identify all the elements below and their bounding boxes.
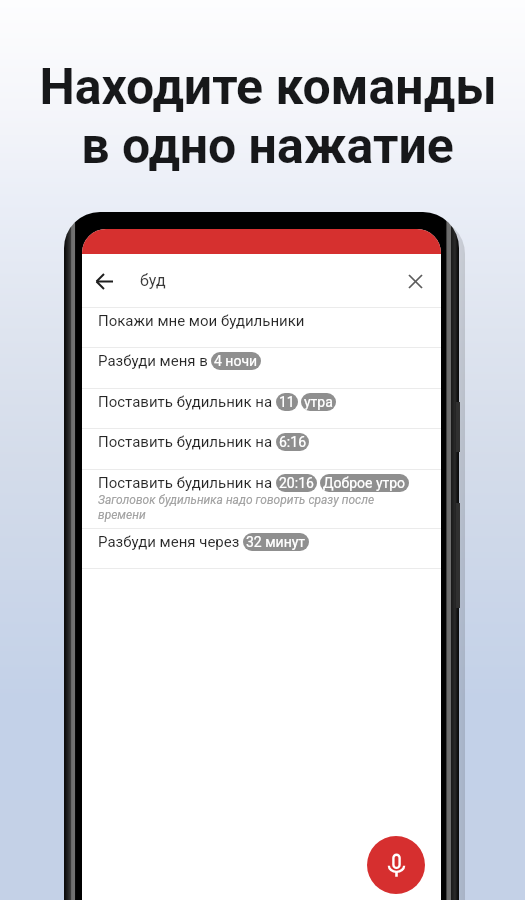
- button[interactable]: Clear search: [393, 259, 437, 303]
- staticText: 32 минут: [246, 534, 306, 550]
- staticText: Поставить будильник на: [98, 393, 273, 411]
- staticText: Разбуди меня через: [98, 533, 240, 551]
- button[interactable]: Voice search: [367, 836, 425, 894]
- staticText: в одно нажатие: [81, 117, 454, 176]
- button[interactable]: Поставить будильник на: [82, 470, 441, 529]
- staticText: утра: [304, 394, 333, 410]
- staticText: 4 ночи: [214, 353, 258, 369]
- button[interactable]: Back: [82, 259, 126, 303]
- staticText: Покажи мне мои будильники: [98, 312, 305, 330]
- button[interactable]: Разбуди меня через: [82, 529, 441, 569]
- button[interactable]: Поставить будильник на: [82, 429, 441, 470]
- staticText: 6:16: [279, 434, 306, 450]
- staticText: Находите команды: [39, 58, 497, 117]
- staticText: 11: [279, 394, 295, 410]
- button[interactable]: Покажи мне мои будильники: [82, 308, 441, 348]
- button[interactable]: Поставить будильник на: [82, 389, 441, 429]
- staticText: Доброе утро: [323, 475, 406, 491]
- staticText: Заголовок будильника надо говорить сразу…: [98, 493, 405, 522]
- button[interactable]: Разбуди меня в: [82, 348, 441, 389]
- staticText: Поставить будильник на: [98, 433, 273, 451]
- staticText: 20:16: [279, 475, 314, 491]
- staticText: Разбуди меня в: [98, 352, 208, 370]
- staticText: буд: [140, 271, 166, 290]
- staticText: Поставить будильник на: [98, 474, 273, 492]
